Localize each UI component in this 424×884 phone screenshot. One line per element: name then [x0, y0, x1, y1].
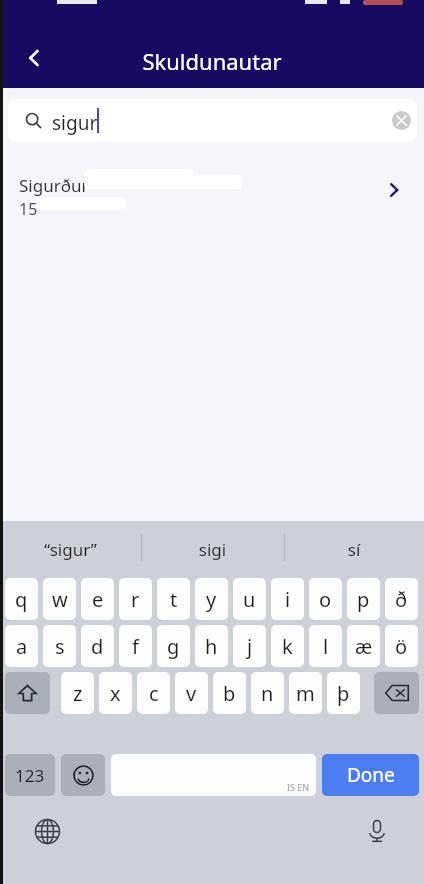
staticText: þ	[337, 680, 350, 707]
staticText: Sigurður	[19, 174, 89, 197]
button[interactable]: i	[271, 578, 304, 620]
button[interactable]: z	[61, 672, 94, 714]
staticText: l	[323, 633, 329, 660]
staticText: sí	[284, 538, 424, 561]
staticText: d	[91, 633, 104, 660]
button[interactable]: a	[5, 625, 38, 667]
staticText: æ	[355, 633, 373, 660]
staticText: f	[132, 633, 139, 660]
button[interactable]: Shift	[5, 672, 50, 714]
button[interactable]: h	[195, 625, 228, 667]
button[interactable]: b	[213, 672, 246, 714]
staticText: c	[149, 680, 159, 707]
staticText: m	[296, 680, 315, 707]
staticText: z	[73, 680, 83, 707]
button[interactable]: u	[233, 578, 266, 620]
staticText: sigi	[141, 538, 284, 561]
button[interactable]: Backspace	[374, 672, 419, 714]
staticText: y	[206, 586, 217, 613]
button[interactable]: k	[271, 625, 304, 667]
staticText: t	[170, 586, 178, 613]
button[interactable]: e	[81, 578, 114, 620]
button[interactable]: p	[347, 578, 380, 620]
button[interactable]: m	[289, 672, 322, 714]
button[interactable]: j	[233, 625, 266, 667]
button[interactable]: Emoji	[61, 754, 105, 796]
button[interactable]: Done	[322, 754, 419, 796]
button[interactable]: r	[119, 578, 152, 620]
staticText: r	[131, 586, 140, 613]
button[interactable]: c	[137, 672, 170, 714]
button[interactable]: q	[5, 578, 38, 620]
button[interactable]: o	[309, 578, 342, 620]
button[interactable]: w	[43, 578, 76, 620]
staticText: s	[55, 633, 65, 660]
staticText: p	[357, 586, 370, 613]
staticText: j	[247, 633, 253, 660]
staticText: i	[285, 586, 291, 613]
staticText: q	[15, 586, 28, 613]
staticText: IS EN	[287, 781, 310, 793]
staticText: 123	[15, 764, 45, 787]
button[interactable]: æ	[347, 625, 380, 667]
staticText: u	[243, 586, 256, 613]
staticText: sigur	[52, 110, 98, 136]
staticText: k	[282, 633, 293, 660]
button[interactable]: Change keyboard language	[25, 809, 69, 853]
staticText: v	[186, 680, 197, 707]
staticText: o	[319, 586, 332, 613]
staticText: h	[205, 633, 218, 660]
button[interactable]: ð	[385, 578, 418, 620]
button[interactable]: þ	[327, 672, 360, 714]
staticText: 15	[19, 198, 38, 220]
button[interactable]: g	[157, 625, 190, 667]
staticText: ð	[395, 586, 408, 613]
staticText: b	[223, 680, 236, 707]
button[interactable]: Back	[12, 36, 56, 80]
button[interactable]: Dictation	[355, 809, 399, 853]
staticText: Skuldunautar	[0, 46, 424, 76]
staticText: e	[92, 586, 104, 613]
staticText: a	[16, 633, 28, 660]
button[interactable]: Open	[372, 168, 416, 212]
button[interactable]: d	[81, 625, 114, 667]
button[interactable]: Space	[111, 754, 316, 796]
staticText: x	[110, 680, 121, 707]
button[interactable]: Sigurður	[0, 158, 424, 222]
button[interactable]: x	[99, 672, 132, 714]
button[interactable]: 123	[5, 754, 55, 796]
staticText: w	[52, 586, 68, 613]
button[interactable]: sigur	[8, 99, 417, 142]
staticText: g	[167, 633, 180, 660]
button[interactable]: v	[175, 672, 208, 714]
button[interactable]: s	[43, 625, 76, 667]
button[interactable]: ö	[385, 625, 418, 667]
staticText: Done	[347, 762, 395, 788]
button[interactable]: f	[119, 625, 152, 667]
button[interactable]: t	[157, 578, 190, 620]
button[interactable]: y	[195, 578, 228, 620]
button[interactable]: l	[309, 625, 342, 667]
staticText: ö	[395, 633, 408, 660]
staticText: n	[261, 680, 274, 707]
button[interactable]: n	[251, 672, 284, 714]
button[interactable]: Clear search	[392, 111, 411, 130]
staticText: “sigur”	[0, 538, 141, 561]
